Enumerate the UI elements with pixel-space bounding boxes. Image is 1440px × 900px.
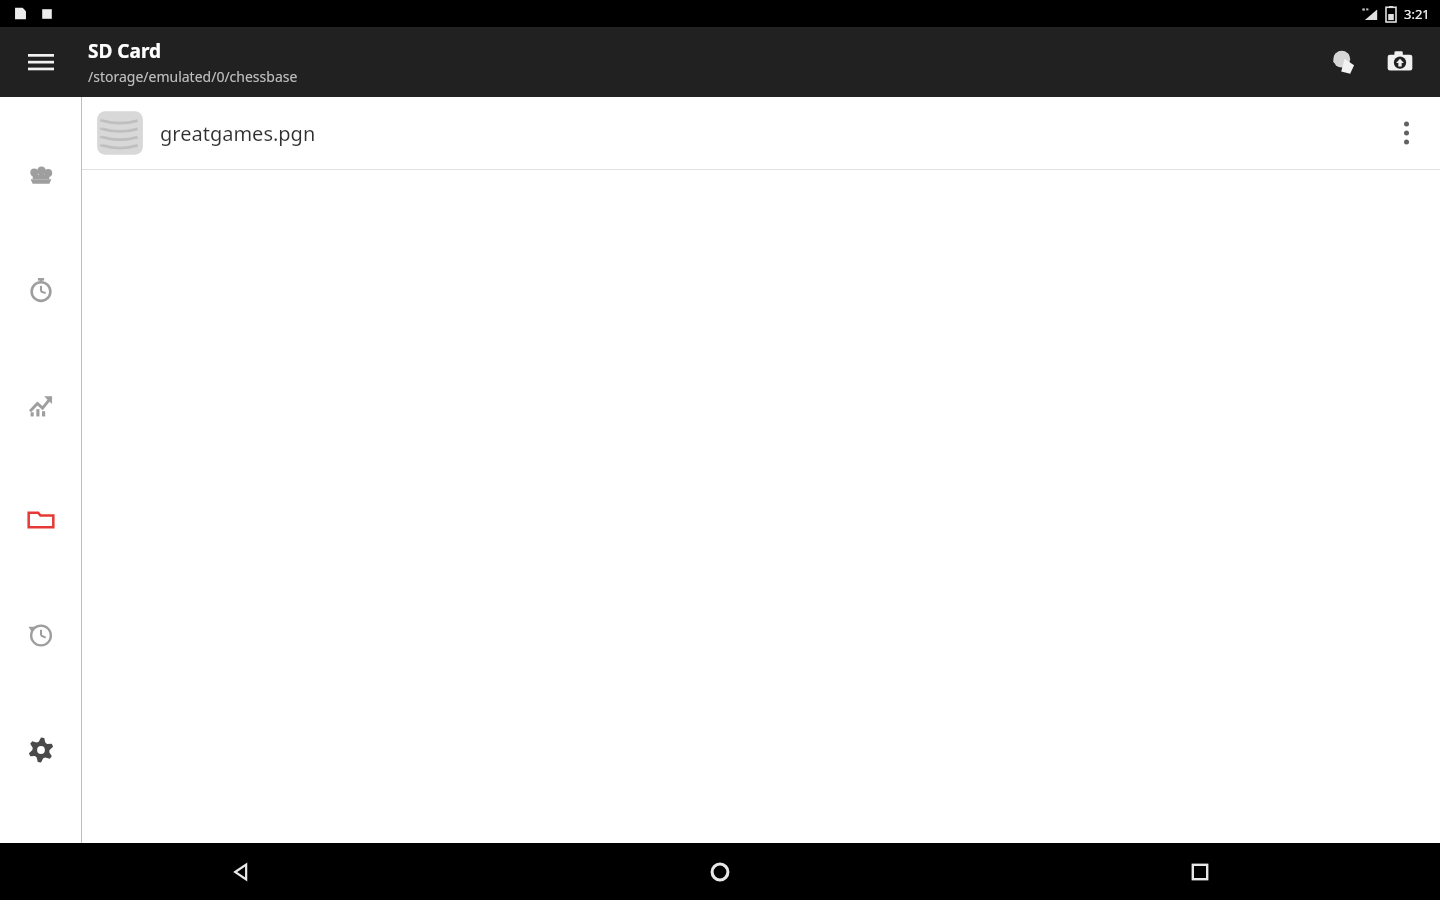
staticText: greatgames.pgn [160,120,316,147]
button[interactable]: Timer [11,260,71,320]
button[interactable]: More options [1382,109,1430,157]
button[interactable]: Back [0,843,480,900]
button[interactable]: Play chess [11,145,71,205]
button[interactable]: Select files [1322,40,1366,84]
button[interactable]: Open navigation drawer [14,35,68,89]
staticText: SD Card [88,38,162,64]
button[interactable]: History [11,605,71,665]
button[interactable]: Statistics [11,375,71,435]
button[interactable]: Home [480,843,960,900]
button[interactable]: greatgames.pgn [82,97,1440,169]
staticText: /storage/emulated/0/chessbase [88,67,298,86]
staticText: 3:21 [1404,5,1430,23]
button[interactable]: Recent apps [960,843,1440,900]
button[interactable]: Settings [11,720,71,780]
button[interactable]: Upload [1378,40,1422,84]
button[interactable]: Files [11,490,71,550]
